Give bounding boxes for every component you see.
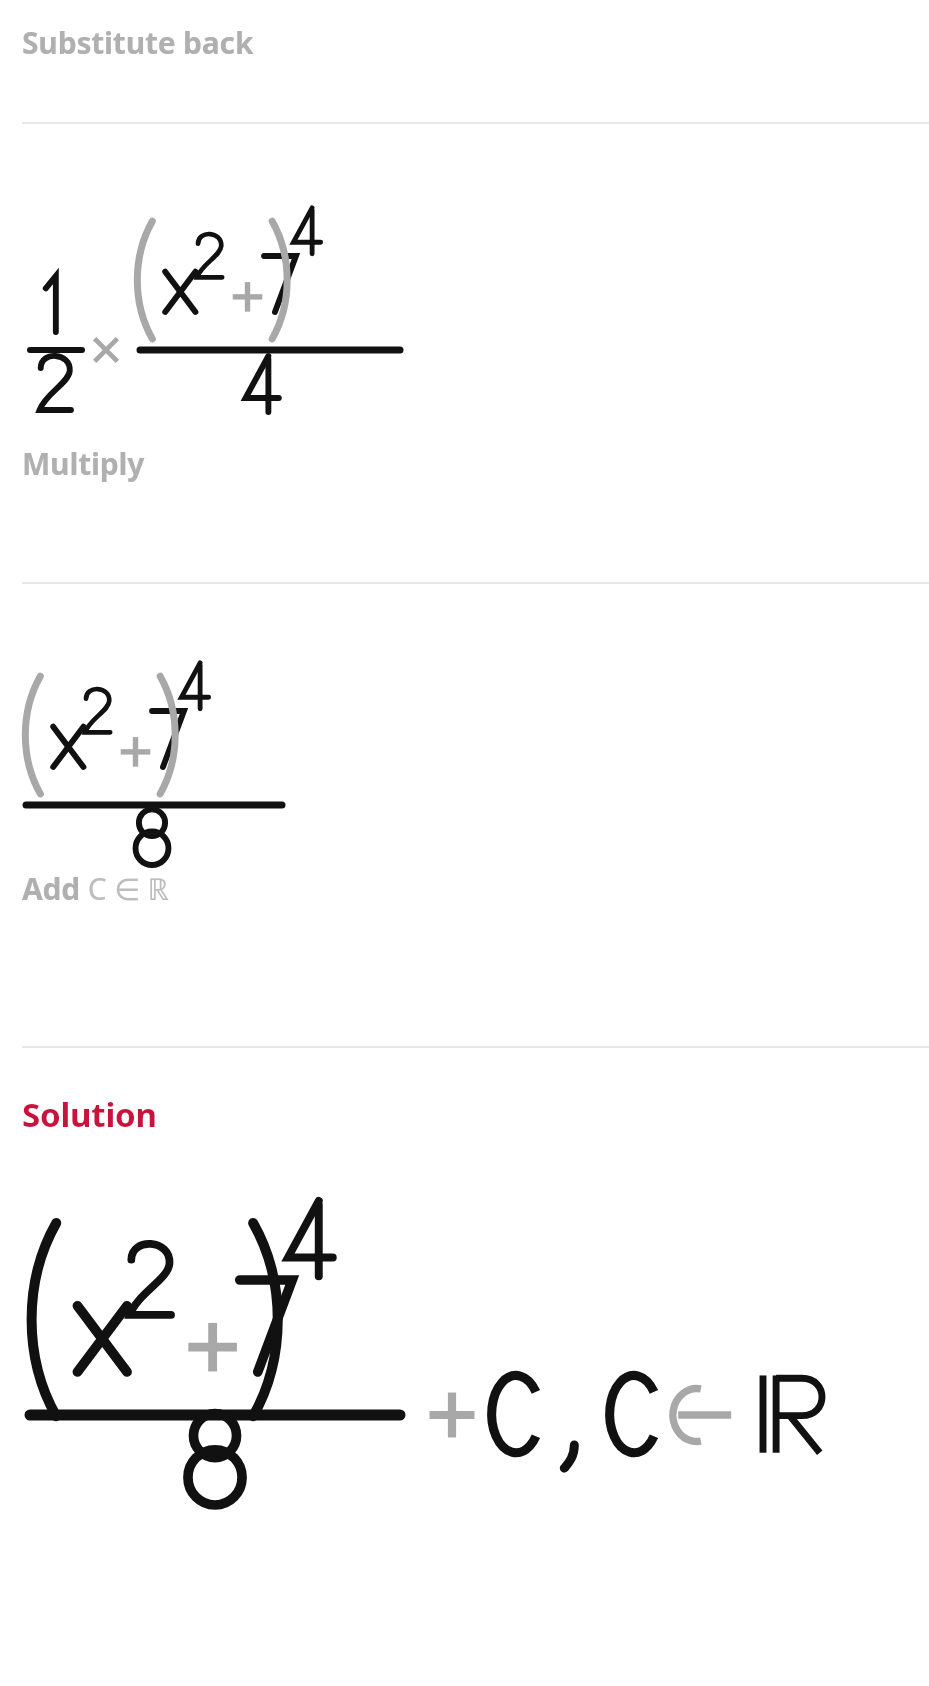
button[interactable]: Add C ∈ ℝ	[22, 868, 169, 909]
staticText: Add C ∈ ℝ	[22, 868, 169, 909]
staticText: Multiply	[22, 443, 145, 484]
button[interactable]: Solution	[22, 1092, 157, 1137]
button[interactable]: Multiply	[22, 443, 145, 484]
button[interactable]: Final solution expression	[0, 1160, 929, 1480]
button[interactable]	[0, 160, 929, 410]
staticText: Solution	[22, 1092, 157, 1137]
button[interactable]: Substitute back	[22, 22, 254, 63]
button[interactable]	[0, 615, 929, 845]
staticText: Substitute back	[22, 22, 254, 63]
